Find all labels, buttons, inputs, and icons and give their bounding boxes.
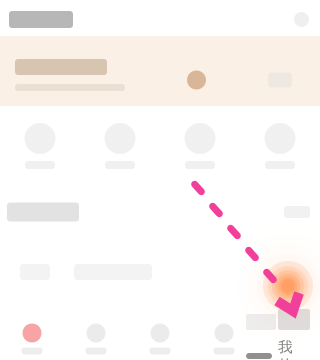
button[interactable]: Home tab, selected — [0, 317, 64, 360]
button[interactable]: Page title — [0, 4, 73, 35]
button[interactable]: Quick action — [80, 114, 160, 178]
button[interactable]: Quick action — [240, 114, 320, 178]
button[interactable]: Promotion banner — [0, 36, 320, 106]
button[interactable]: More options — [294, 4, 320, 35]
button[interactable]: See more — [284, 202, 320, 222]
button[interactable]: Quick action — [0, 114, 80, 178]
button[interactable]: List item — [0, 260, 320, 284]
button[interactable]: Quick action — [160, 114, 240, 178]
staticText: 我的 — [278, 338, 293, 360]
button[interactable]: Tab — [128, 317, 192, 360]
button[interactable]: Tab — [64, 317, 128, 360]
button[interactable]: Tab — [192, 317, 256, 360]
button[interactable]: Tab — [256, 317, 320, 360]
